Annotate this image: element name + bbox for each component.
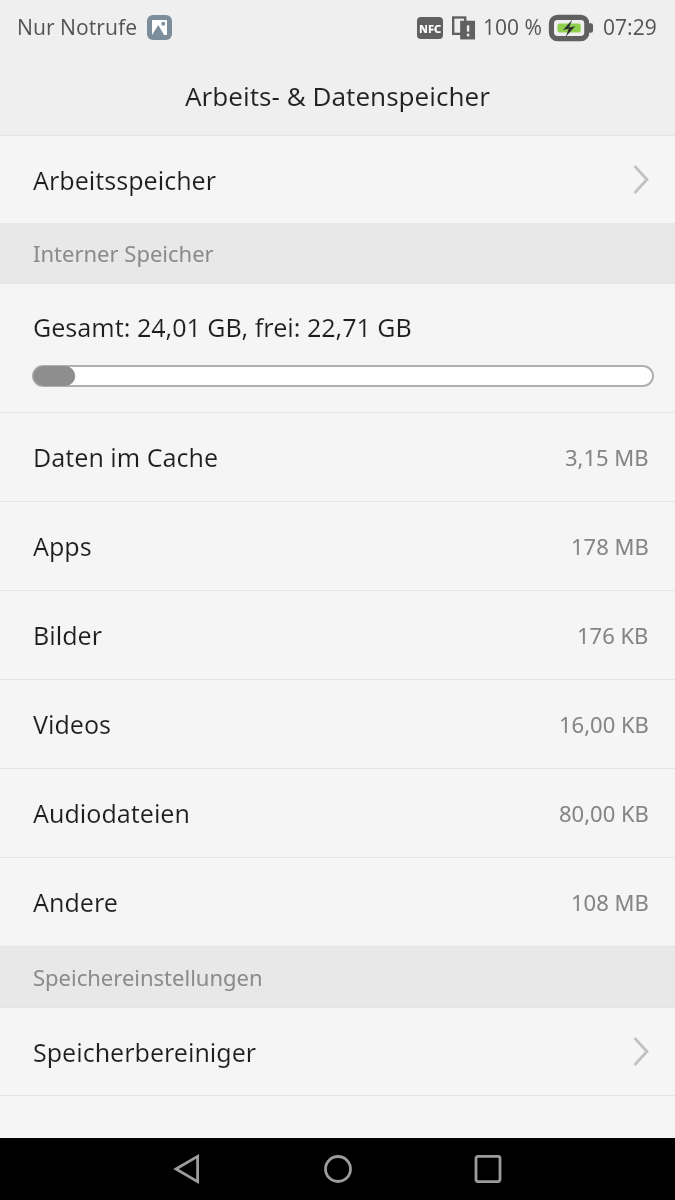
button[interactable]: Recent apps xyxy=(413,1138,563,1200)
staticText: Gesamt: 24,01 GB, frei: 22,71 GB xyxy=(33,310,412,344)
staticText: Videos xyxy=(33,707,112,741)
staticText: Apps xyxy=(33,529,92,563)
button[interactable]: Bilder xyxy=(0,591,675,679)
staticText: Andere xyxy=(33,885,118,919)
staticText: Nur Notrufe xyxy=(17,13,138,42)
staticText: Daten im Cache xyxy=(33,440,219,474)
staticText: Audiodateien xyxy=(33,796,190,830)
staticText: Interner Speicher xyxy=(33,238,214,268)
button[interactable]: Audiodateien xyxy=(0,769,675,857)
staticText: NFC xyxy=(419,21,442,36)
button[interactable]: Daten im Cache xyxy=(0,413,675,501)
button[interactable]: Apps xyxy=(0,502,675,590)
button[interactable]: Videos xyxy=(0,680,675,768)
staticText: Arbeits- & Datenspeicher xyxy=(185,78,490,113)
button[interactable]: Home xyxy=(263,1138,413,1200)
staticText: Speichereinstellungen xyxy=(33,962,263,992)
staticText: 178 MB xyxy=(571,531,649,561)
staticText: 100 % xyxy=(483,13,542,42)
button[interactable]: Back xyxy=(113,1138,263,1200)
staticText: 176 KB xyxy=(577,620,649,650)
button[interactable]: Andere xyxy=(0,858,675,946)
staticText: Arbeitsspeicher xyxy=(33,163,217,197)
staticText: Bilder xyxy=(33,618,102,652)
staticText: 108 MB xyxy=(571,887,649,917)
staticText: 80,00 KB xyxy=(559,798,649,828)
staticText: 07:29 xyxy=(603,13,657,42)
staticText: 16,00 KB xyxy=(559,709,649,739)
button[interactable]: Arbeitsspeicher xyxy=(0,136,675,223)
staticText: 3,15 MB xyxy=(565,442,649,472)
staticText: Speicherbereiniger xyxy=(33,1035,257,1069)
button[interactable]: Speicherbereiniger xyxy=(0,1008,675,1095)
